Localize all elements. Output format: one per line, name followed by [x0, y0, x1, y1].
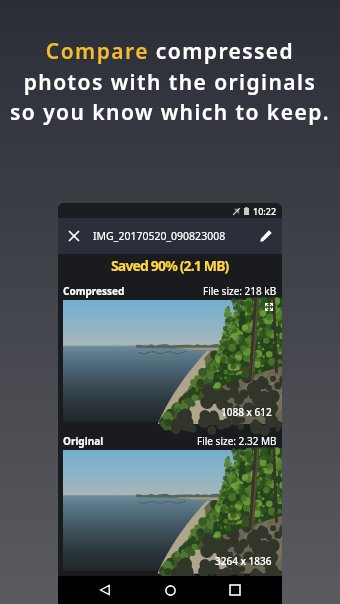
staticText: Saved 90% (2.1 MB) [111, 256, 229, 275]
button[interactable]: Rename [250, 220, 282, 252]
staticText: Original [63, 434, 104, 448]
staticText: 10:22 [253, 205, 277, 217]
button[interactable]: Close [58, 220, 90, 252]
staticText: 3264 x 1836 [215, 554, 272, 568]
button[interactable]: Home [152, 576, 188, 604]
staticText: Compressed [63, 284, 125, 298]
staticText: Compare compressed photos with the origi… [0, 37, 340, 126]
staticText: 1088 x 612 [221, 405, 272, 419]
button[interactable]: 1088 x 612 [63, 300, 277, 422]
button[interactable]: 3264 x 1836 [63, 450, 277, 571]
button[interactable]: Back [87, 576, 123, 604]
staticText: File size: 2.32 MB [197, 434, 277, 448]
staticText: File size: 218 kB [203, 284, 277, 298]
button[interactable]: Recents [217, 576, 253, 604]
staticText: IMG_20170520_090823008 [93, 229, 226, 243]
